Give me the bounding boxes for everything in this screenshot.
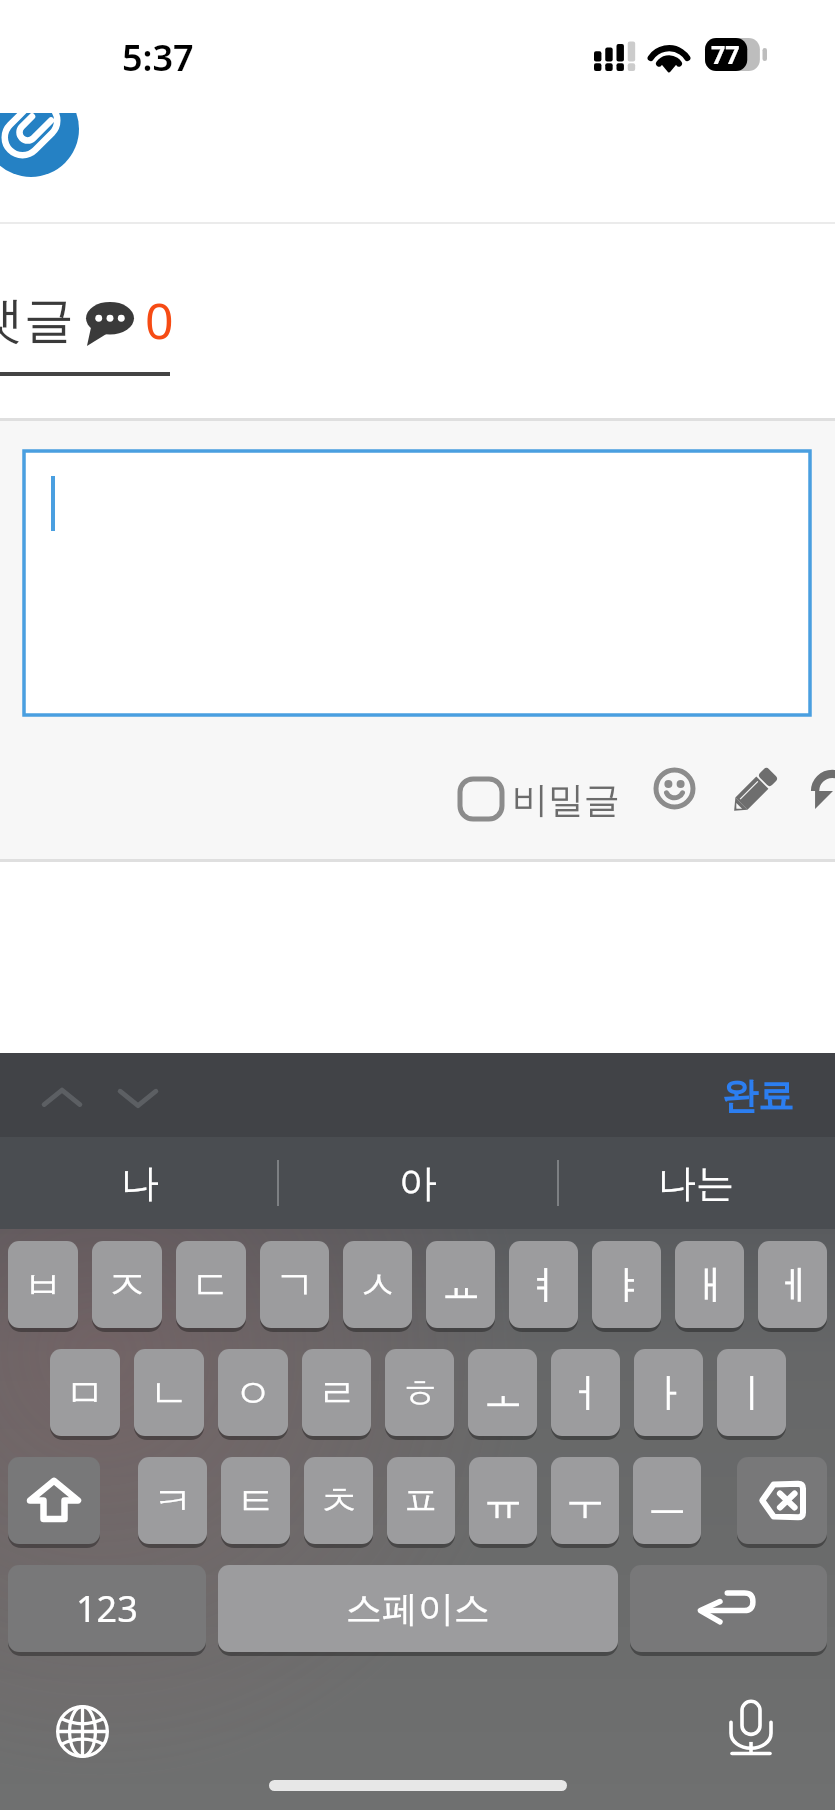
- staticText: ㅊ: [319, 1476, 359, 1526]
- button[interactable]: ㅍ: [387, 1457, 455, 1544]
- staticText: ㅡ: [647, 1476, 687, 1526]
- staticText: 나: [121, 1159, 159, 1207]
- button[interactable]: Dictation: [726, 1699, 776, 1757]
- staticText: ㅈ: [107, 1260, 147, 1310]
- staticText: ㄷ: [191, 1260, 231, 1310]
- staticText: ㅠ: [483, 1476, 523, 1526]
- button[interactable]: 스페이스: [218, 1565, 618, 1652]
- staticText: ㅅ: [358, 1260, 398, 1310]
- staticText: 5:37: [122, 33, 194, 82]
- staticText: ㅛ: [441, 1260, 481, 1310]
- button[interactable]: ㅛ: [426, 1241, 495, 1328]
- staticText: 아: [399, 1159, 437, 1207]
- staticText: 댓글: [0, 289, 74, 352]
- button[interactable]: ㅡ: [633, 1457, 701, 1544]
- staticText: 스페이스: [346, 1586, 490, 1631]
- staticText: ㅍ: [401, 1476, 441, 1526]
- button[interactable]: ㅓ: [551, 1349, 620, 1436]
- button[interactable]: ㄱ: [260, 1241, 329, 1328]
- button[interactable]: ㅕ: [509, 1241, 578, 1328]
- staticText: 완료: [722, 1073, 794, 1118]
- staticText: ㅁ: [65, 1368, 105, 1418]
- button[interactable]: Emoji: [653, 767, 696, 810]
- button[interactable]: ㅈ: [92, 1241, 162, 1328]
- button[interactable]: Previous field: [34, 1071, 90, 1127]
- button[interactable]: Attach file: [0, 113, 110, 177]
- button[interactable]: 비밀글: [460, 768, 620, 830]
- button[interactable]: ㅑ: [592, 1241, 661, 1328]
- button[interactable]: ㄹ: [302, 1349, 371, 1436]
- button[interactable]: ㄴ: [134, 1349, 204, 1436]
- button[interactable]: ㅅ: [343, 1241, 412, 1328]
- staticText: 비밀글: [512, 777, 620, 822]
- button[interactable]: 나는: [557, 1137, 835, 1229]
- button[interactable]: ㅁ: [50, 1349, 120, 1436]
- staticText: ㄱ: [275, 1260, 315, 1310]
- button[interactable]: ㅠ: [469, 1457, 537, 1544]
- button[interactable]: Write: [725, 763, 782, 820]
- button[interactable]: ㅊ: [304, 1457, 373, 1544]
- staticText: ㅗ: [483, 1368, 523, 1418]
- button[interactable]: ㅎ: [385, 1349, 454, 1436]
- button[interactable]: 나: [0, 1137, 279, 1229]
- button[interactable]: ㄷ: [176, 1241, 246, 1328]
- button[interactable]: ㅜ: [551, 1457, 619, 1544]
- button[interactable]: Refresh: [800, 764, 835, 816]
- staticText: ㅇ: [233, 1368, 273, 1418]
- button[interactable]: 123: [8, 1565, 206, 1652]
- button[interactable]: ㅋ: [138, 1457, 207, 1544]
- staticText: ㅂ: [23, 1260, 63, 1310]
- button[interactable]: ㅌ: [221, 1457, 290, 1544]
- staticText: ㅓ: [566, 1368, 606, 1418]
- staticText: ㄴ: [149, 1368, 189, 1418]
- staticText: 123: [76, 1584, 138, 1633]
- button[interactable]: ㅗ: [468, 1349, 537, 1436]
- staticText: ㅜ: [565, 1476, 605, 1526]
- staticText: 77: [711, 37, 740, 70]
- staticText: ㅐ: [690, 1260, 730, 1310]
- staticText: ㅕ: [524, 1260, 564, 1310]
- button[interactable]: ㅔ: [758, 1241, 827, 1328]
- button[interactable]: ㅇ: [218, 1349, 288, 1436]
- button[interactable]: Backspace: [737, 1457, 827, 1544]
- button[interactable]: Enter: [630, 1565, 827, 1652]
- button[interactable]: 완료: [712, 1063, 804, 1128]
- staticText: ㅣ: [732, 1368, 772, 1418]
- button[interactable]: ㅣ: [717, 1349, 786, 1436]
- button[interactable]: ㅏ: [634, 1349, 703, 1436]
- staticText: ㄹ: [317, 1368, 357, 1418]
- button[interactable]: Shift: [8, 1457, 100, 1544]
- staticText: ㅔ: [773, 1260, 813, 1310]
- button[interactable]: 아: [279, 1137, 557, 1229]
- button[interactable]: Change keyboard: [56, 1705, 109, 1758]
- button[interactable]: Next field: [110, 1071, 166, 1127]
- staticText: ㅌ: [236, 1476, 276, 1526]
- button[interactable]: ㅂ: [8, 1241, 78, 1328]
- staticText: ㅏ: [649, 1368, 689, 1418]
- staticText: 나는: [658, 1159, 734, 1207]
- button[interactable]: ㅐ: [675, 1241, 744, 1328]
- button[interactable]: [24, 451, 810, 715]
- staticText: ㅋ: [153, 1476, 193, 1526]
- staticText: 0: [145, 286, 174, 354]
- staticText: ㅎ: [400, 1368, 440, 1418]
- staticText: ㅑ: [607, 1260, 647, 1310]
